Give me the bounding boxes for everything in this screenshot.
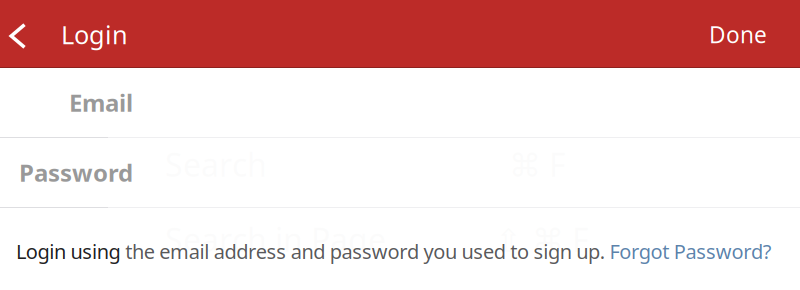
button[interactable]: Back (0, 0, 61, 67)
button[interactable]: Email (0, 68, 800, 137)
staticText: Password (19, 157, 133, 188)
button[interactable]: Done (709, 0, 800, 67)
staticText: Search in Page (165, 218, 386, 260)
button[interactable]: Forgot Password? (609, 238, 772, 265)
staticText: Email (69, 87, 133, 118)
staticText: ⇧ ⌘ F (495, 218, 589, 260)
staticText: Login (61, 18, 128, 51)
button[interactable]: Password (0, 138, 800, 207)
staticText: Login using (16, 238, 125, 265)
staticText: the email address and password you used … (125, 238, 609, 265)
staticText: Forgot Password? (609, 238, 772, 265)
staticText: Done (709, 19, 767, 49)
